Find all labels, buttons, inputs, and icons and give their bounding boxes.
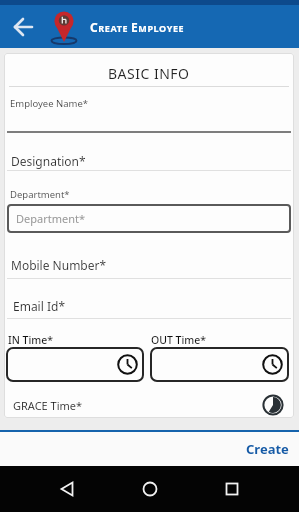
button[interactable]: [6, 347, 144, 382]
button[interactable]: Email Id*: [13, 298, 65, 314]
button[interactable]: Create: [246, 440, 289, 458]
staticText: CREATE EMPLOYEE: [90, 19, 185, 35]
staticText: OUT Time*: [151, 333, 207, 347]
button[interactable]: Designation*: [11, 153, 86, 169]
staticText: Department*: [10, 188, 70, 201]
button[interactable]: [217, 474, 247, 504]
button[interactable]: [8, 12, 38, 42]
button[interactable]: Mobile Number*: [11, 257, 107, 273]
button[interactable]: [135, 474, 165, 504]
button[interactable]: Department*: [7, 204, 291, 233]
button[interactable]: GRACE Time*: [13, 398, 83, 413]
staticText: IN Time*: [8, 333, 54, 347]
button[interactable]: [150, 347, 289, 382]
button[interactable]: [53, 474, 83, 504]
button[interactable]: Employee Name*: [10, 97, 89, 110]
staticText: BASIC INFO: [108, 64, 190, 83]
staticText: Department*: [16, 211, 86, 226]
